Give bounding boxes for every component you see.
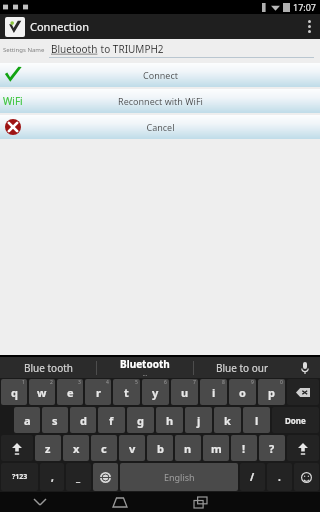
button[interactable]: q — [1, 379, 27, 405]
staticText: 8 — [222, 379, 225, 386]
staticText: u — [181, 385, 189, 400]
staticText: b — [157, 441, 164, 456]
button[interactable]: Voice input — [290, 357, 320, 378]
staticText: q — [11, 385, 18, 400]
button[interactable]: a — [14, 407, 40, 433]
staticText: p — [268, 385, 275, 400]
staticText: 7 — [193, 379, 196, 386]
button[interactable]: Blue to our — [194, 357, 290, 378]
staticText: Bluetooth — [51, 42, 98, 56]
button[interactable]: p — [258, 379, 285, 405]
staticText: Connection — [30, 19, 89, 34]
staticText: Connect — [143, 69, 178, 81]
button[interactable]: m — [203, 435, 229, 461]
staticText: i — [212, 385, 216, 400]
staticText: 2 — [50, 379, 53, 386]
button[interactable]: Shift — [1, 435, 33, 461]
staticText: Blue to our — [216, 361, 269, 375]
button[interactable]: l — [243, 407, 270, 433]
button[interactable]: s — [42, 407, 68, 433]
staticText: g — [137, 413, 144, 428]
button[interactable]: b — [147, 435, 173, 461]
button[interactable]: k — [214, 407, 241, 433]
button[interactable]: Cancel — [0, 115, 320, 139]
button[interactable]: , — [40, 463, 64, 491]
button[interactable]: Recent apps — [160, 492, 240, 512]
staticText: ? — [269, 441, 275, 456]
staticText: WiFi — [3, 94, 23, 108]
staticText: / — [250, 470, 255, 484]
button[interactable]: English — [120, 463, 238, 491]
staticText: , — [51, 470, 54, 484]
button[interactable]: Shift — [287, 435, 319, 461]
staticText: c — [101, 441, 107, 456]
button[interactable]: Bluetooth — [97, 357, 193, 378]
button[interactable]: ?123 — [1, 463, 38, 491]
button[interactable]: WiFi — [0, 89, 320, 113]
staticText: Cancel — [146, 121, 175, 133]
staticText: Reconnect with WiFi — [118, 95, 203, 107]
button[interactable]: Bluetooth — [49, 42, 314, 58]
staticText: 0 — [280, 379, 283, 386]
staticText: Blue tooth — [24, 361, 73, 375]
staticText: x — [73, 441, 80, 456]
staticText: w — [37, 385, 47, 400]
button[interactable]: i — [200, 379, 227, 405]
button[interactable]: y — [142, 379, 169, 405]
button[interactable]: w — [29, 379, 55, 405]
button[interactable]: g — [127, 407, 154, 433]
button[interactable]: Connect — [0, 63, 320, 87]
staticText: _ — [76, 470, 81, 484]
staticText: y — [152, 385, 159, 400]
staticText: Settings Name — [3, 46, 45, 54]
staticText: a — [24, 413, 31, 428]
button[interactable]: z — [35, 435, 61, 461]
staticText: 4 — [106, 379, 109, 386]
button[interactable]: Hide keyboard — [0, 492, 80, 512]
button[interactable]: Change language — [93, 463, 118, 491]
button[interactable]: Emoji — [294, 463, 319, 491]
button[interactable]: u — [171, 379, 198, 405]
button[interactable]: h — [156, 407, 183, 433]
staticText: . — [278, 470, 281, 484]
staticText: Bluetooth — [120, 357, 170, 371]
staticText: t — [124, 385, 129, 400]
button[interactable]: f — [98, 407, 125, 433]
button[interactable]: v — [119, 435, 145, 461]
staticText: d — [80, 413, 87, 428]
button[interactable]: / — [240, 463, 265, 491]
button[interactable]: r — [85, 379, 111, 405]
button[interactable]: _ — [66, 463, 91, 491]
staticText: n — [184, 441, 192, 456]
button[interactable]: ? — [259, 435, 285, 461]
button[interactable]: j — [185, 407, 212, 433]
button[interactable]: d — [70, 407, 96, 433]
staticText: k — [224, 413, 231, 428]
staticText: ?123 — [12, 472, 28, 482]
button[interactable]: n — [175, 435, 201, 461]
button[interactable]: o — [229, 379, 256, 405]
button[interactable]: Done — [272, 407, 319, 433]
staticText: ... — [143, 371, 148, 378]
button[interactable]: Home — [80, 492, 160, 512]
staticText: 1 — [22, 379, 25, 386]
button[interactable]: More options — [298, 14, 320, 39]
staticText: r — [96, 385, 101, 400]
button[interactable]: App icon, navigate up — [5, 17, 25, 37]
staticText: ! — [242, 441, 246, 456]
button[interactable]: Blue tooth — [0, 357, 96, 378]
button[interactable]: ! — [231, 435, 257, 461]
button[interactable]: e — [57, 379, 83, 405]
button[interactable]: Backspace — [287, 379, 319, 405]
staticText: h — [166, 413, 174, 428]
staticText: 9 — [251, 379, 254, 386]
button[interactable]: x — [63, 435, 89, 461]
button[interactable]: . — [267, 463, 292, 491]
button[interactable]: t — [113, 379, 140, 405]
staticText: 6 — [164, 379, 167, 386]
staticText: l — [255, 413, 259, 428]
staticText: j — [197, 413, 201, 428]
staticText: z — [45, 441, 51, 456]
button[interactable]: c — [91, 435, 117, 461]
staticText: 17:07 — [293, 1, 317, 13]
